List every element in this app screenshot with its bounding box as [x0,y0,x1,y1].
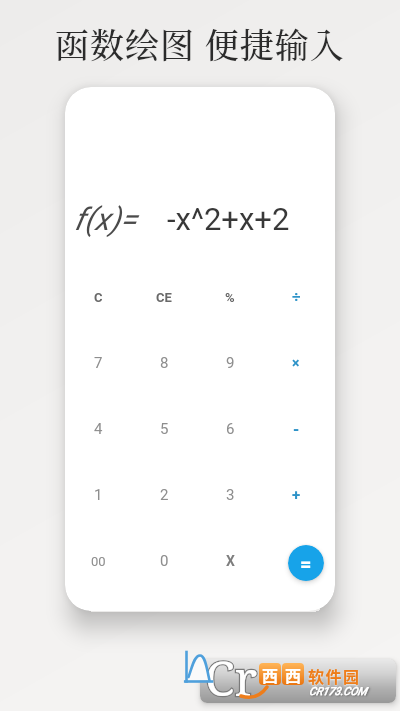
button[interactable]: CE [131,264,197,330]
staticText: 5 [160,420,169,438]
button[interactable]: 5 [131,396,197,462]
staticText: + [292,486,301,504]
staticText: - [293,420,300,439]
staticText: % [225,290,235,305]
button[interactable]: 8 [131,330,197,396]
button[interactable]: 2 [131,462,197,528]
staticText: CR173.COM [309,685,367,698]
button[interactable]: 4 [65,396,131,462]
staticText: -x^2+x+2 [167,201,290,237]
staticText: = [300,552,312,575]
button[interactable]: 00 [65,528,131,594]
staticText: × [292,355,300,371]
button[interactable]: 3 [197,462,263,528]
staticText: 9 [226,354,235,372]
staticText: X [226,553,235,569]
staticText: 1 [94,486,103,504]
staticText: CE [156,290,172,305]
staticText: ÷ [292,288,301,306]
staticText: 4 [94,420,103,438]
button[interactable]: × [263,330,329,396]
staticText: Cr [205,645,258,710]
staticText: 0 [160,552,169,570]
staticText: 西 [262,663,279,685]
staticText: C [94,290,103,305]
staticText: f(x)= [74,201,137,237]
button[interactable]: 7 [65,330,131,396]
button[interactable]: 0 [131,528,197,594]
staticText: 7 [94,354,103,372]
staticText: 软件园 [308,664,361,687]
button[interactable]: X [197,528,263,594]
staticText: 2 [160,486,169,504]
staticText: 8 [160,354,169,372]
button[interactable]: ÷ [263,264,329,330]
button[interactable]: + [263,462,329,528]
staticText: 西 [285,663,302,685]
staticText: Cr [205,645,258,710]
button[interactable]: 9 [197,330,263,396]
button[interactable]: - [263,396,329,462]
staticText: 6 [226,420,235,438]
staticText: 函数绘图 便捷输入 [55,19,345,68]
button[interactable]: % [197,264,263,330]
button[interactable]: 6 [197,396,263,462]
button[interactable]: 1 [65,462,131,528]
button[interactable]: C [65,264,131,330]
button[interactable]: = [288,545,324,581]
staticText: 00 [91,554,106,569]
staticText: 3 [226,486,235,504]
